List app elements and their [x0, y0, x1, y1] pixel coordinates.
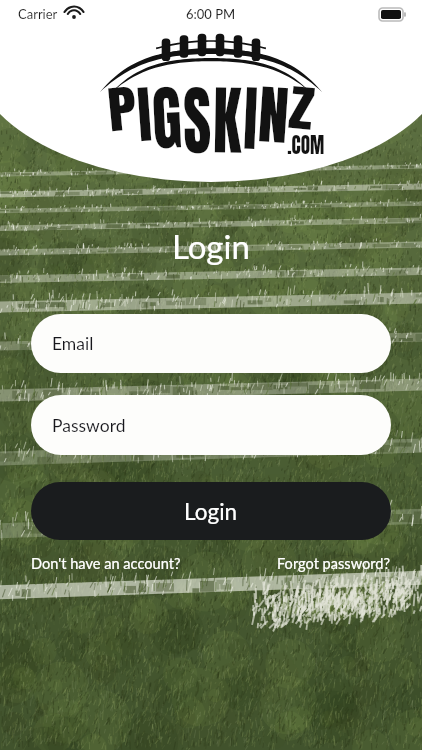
button[interactable]: Login [31, 482, 391, 540]
staticText: Don't have an account? [31, 555, 181, 573]
staticText: Login [172, 226, 250, 266]
button[interactable]: Password [31, 395, 391, 455]
staticText: Carrier [18, 6, 58, 22]
button[interactable]: Email [31, 314, 391, 373]
button[interactable]: Forgot password? [277, 555, 391, 573]
staticText: Email [52, 333, 94, 354]
staticText: Password [52, 415, 126, 436]
button[interactable]: Don't have an account? [31, 555, 181, 573]
staticText: 6:00 PM [186, 6, 236, 22]
staticText: Login [184, 498, 238, 525]
staticText: Forgot password? [277, 555, 391, 573]
